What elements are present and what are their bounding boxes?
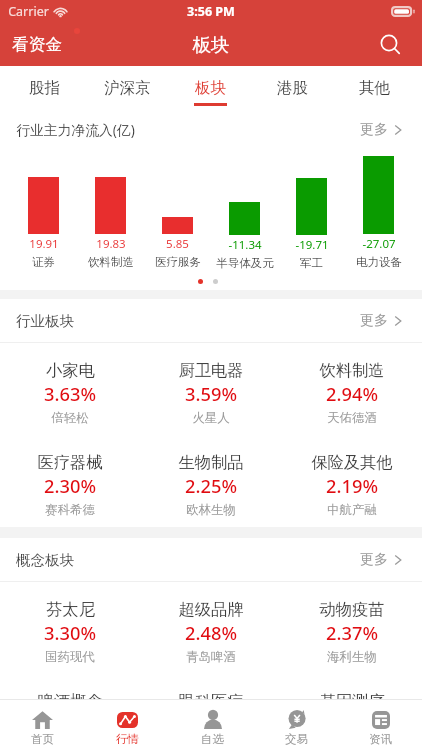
staticText: 板块 — [192, 33, 230, 56]
staticText: 交易 — [285, 732, 308, 746]
staticText: 超级品牌 — [178, 599, 244, 620]
staticText: 更多 — [360, 312, 388, 330]
staticText: 动物疫苗 — [319, 599, 385, 620]
staticText: 概念板块 — [16, 551, 74, 569]
staticText: 保险及其他 — [311, 452, 393, 473]
staticText: 电力设备 — [356, 255, 402, 269]
button[interactable]: 啤酒概念 — [0, 674, 140, 699]
button[interactable]: 更多 — [350, 546, 422, 574]
staticText: 生物制品 — [178, 452, 244, 473]
staticText: 基因测序 — [319, 691, 385, 699]
staticText: 天佑德酒 — [327, 410, 377, 426]
staticText: 2.19% — [326, 473, 378, 498]
staticText: 中航产融 — [327, 502, 377, 518]
staticText: 2.30% — [44, 473, 96, 498]
button[interactable]: 厨卫电器 — [140, 343, 281, 435]
button[interactable]: 生物制品 — [140, 435, 281, 527]
staticText: 国药现代 — [45, 649, 95, 665]
button[interactable]: 基因测序 — [281, 674, 422, 699]
button[interactable]: 医疗器械 — [0, 435, 140, 527]
staticText: 板块 — [195, 78, 226, 98]
button[interactable]: 动物疫苗 — [281, 582, 422, 674]
button[interactable]: 自选 — [170, 700, 254, 750]
staticText: 半导体及元 — [216, 256, 274, 270]
staticText: 饮料制造 — [319, 360, 385, 381]
button[interactable]: Search — [369, 26, 422, 63]
staticText: 火星人 — [192, 410, 230, 426]
button[interactable]: 资讯 — [338, 700, 422, 750]
staticText: 行业主力净流入(亿) — [16, 120, 135, 139]
staticText: 眼科医疗 — [178, 691, 244, 699]
staticText: 小家电 — [46, 360, 95, 381]
button[interactable]: 饮料制造 — [281, 343, 422, 435]
button[interactable]: 交易 — [254, 700, 338, 750]
button[interactable]: 行情 — [85, 700, 170, 750]
staticText: 啤酒概念 — [37, 691, 103, 699]
staticText: Carrier — [8, 3, 49, 20]
staticText: 自选 — [201, 732, 224, 746]
staticText: 沪深京 — [104, 78, 151, 98]
button[interactable]: 更多 — [350, 307, 422, 335]
staticText: 海利生物 — [327, 649, 377, 665]
staticText: 看资金 — [12, 34, 62, 55]
staticText: 首页 — [31, 732, 54, 746]
staticText: 5.85 — [166, 236, 189, 252]
staticText: 更多 — [360, 121, 388, 139]
staticText: 19.83 — [96, 236, 126, 252]
staticText: 3:56 PM — [187, 3, 235, 20]
button[interactable]: 小家电 — [0, 343, 140, 435]
button[interactable]: 港股 — [251, 66, 333, 111]
staticText: 倍轻松 — [51, 410, 89, 426]
button[interactable]: 更多 — [350, 116, 422, 144]
staticText: 青岛啤酒 — [186, 649, 236, 665]
staticText: 芬太尼 — [46, 599, 95, 620]
button[interactable]: 沪深京 — [86, 66, 169, 111]
staticText: 19.91 — [29, 236, 59, 252]
staticText: 医疗器械 — [37, 452, 103, 473]
staticText: 厨卫电器 — [178, 360, 244, 381]
staticText: 3.59% — [185, 381, 237, 406]
staticText: -19.71 — [295, 237, 329, 253]
staticText: 赛科希德 — [45, 502, 95, 518]
staticText: 2.94% — [326, 381, 378, 406]
button[interactable]: 首页 — [0, 700, 85, 750]
button[interactable]: 芬太尼 — [0, 582, 140, 674]
staticText: 2.37% — [326, 620, 378, 645]
staticText: 证券 — [32, 255, 55, 269]
staticText: 股指 — [29, 78, 60, 98]
staticText: 更多 — [360, 551, 388, 569]
staticText: 军工 — [300, 256, 323, 270]
staticText: -27.07 — [362, 236, 396, 252]
staticText: 医疗服务 — [155, 255, 201, 269]
button[interactable]: 超级品牌 — [140, 582, 281, 674]
staticText: -11.34 — [228, 237, 262, 253]
staticText: 欧林生物 — [186, 502, 236, 518]
staticText: 饮料制造 — [88, 255, 134, 269]
staticText: 其他 — [359, 78, 390, 98]
button[interactable]: 眼科医疗 — [140, 674, 281, 699]
staticText: 2.25% — [185, 473, 237, 498]
button[interactable]: 板块 — [169, 66, 251, 111]
staticText: 行情 — [116, 732, 139, 746]
button[interactable]: 股指 — [3, 66, 86, 111]
staticText: 2.48% — [185, 620, 237, 645]
button[interactable]: 其他 — [333, 66, 415, 111]
staticText: 3.63% — [44, 381, 96, 406]
button[interactable]: 看资金 — [0, 24, 74, 65]
staticText: 资讯 — [369, 732, 392, 746]
staticText: 港股 — [277, 78, 308, 98]
staticText: 3.30% — [44, 620, 96, 645]
staticText: 行业板块 — [16, 312, 74, 330]
button[interactable]: 保险及其他 — [281, 435, 422, 527]
